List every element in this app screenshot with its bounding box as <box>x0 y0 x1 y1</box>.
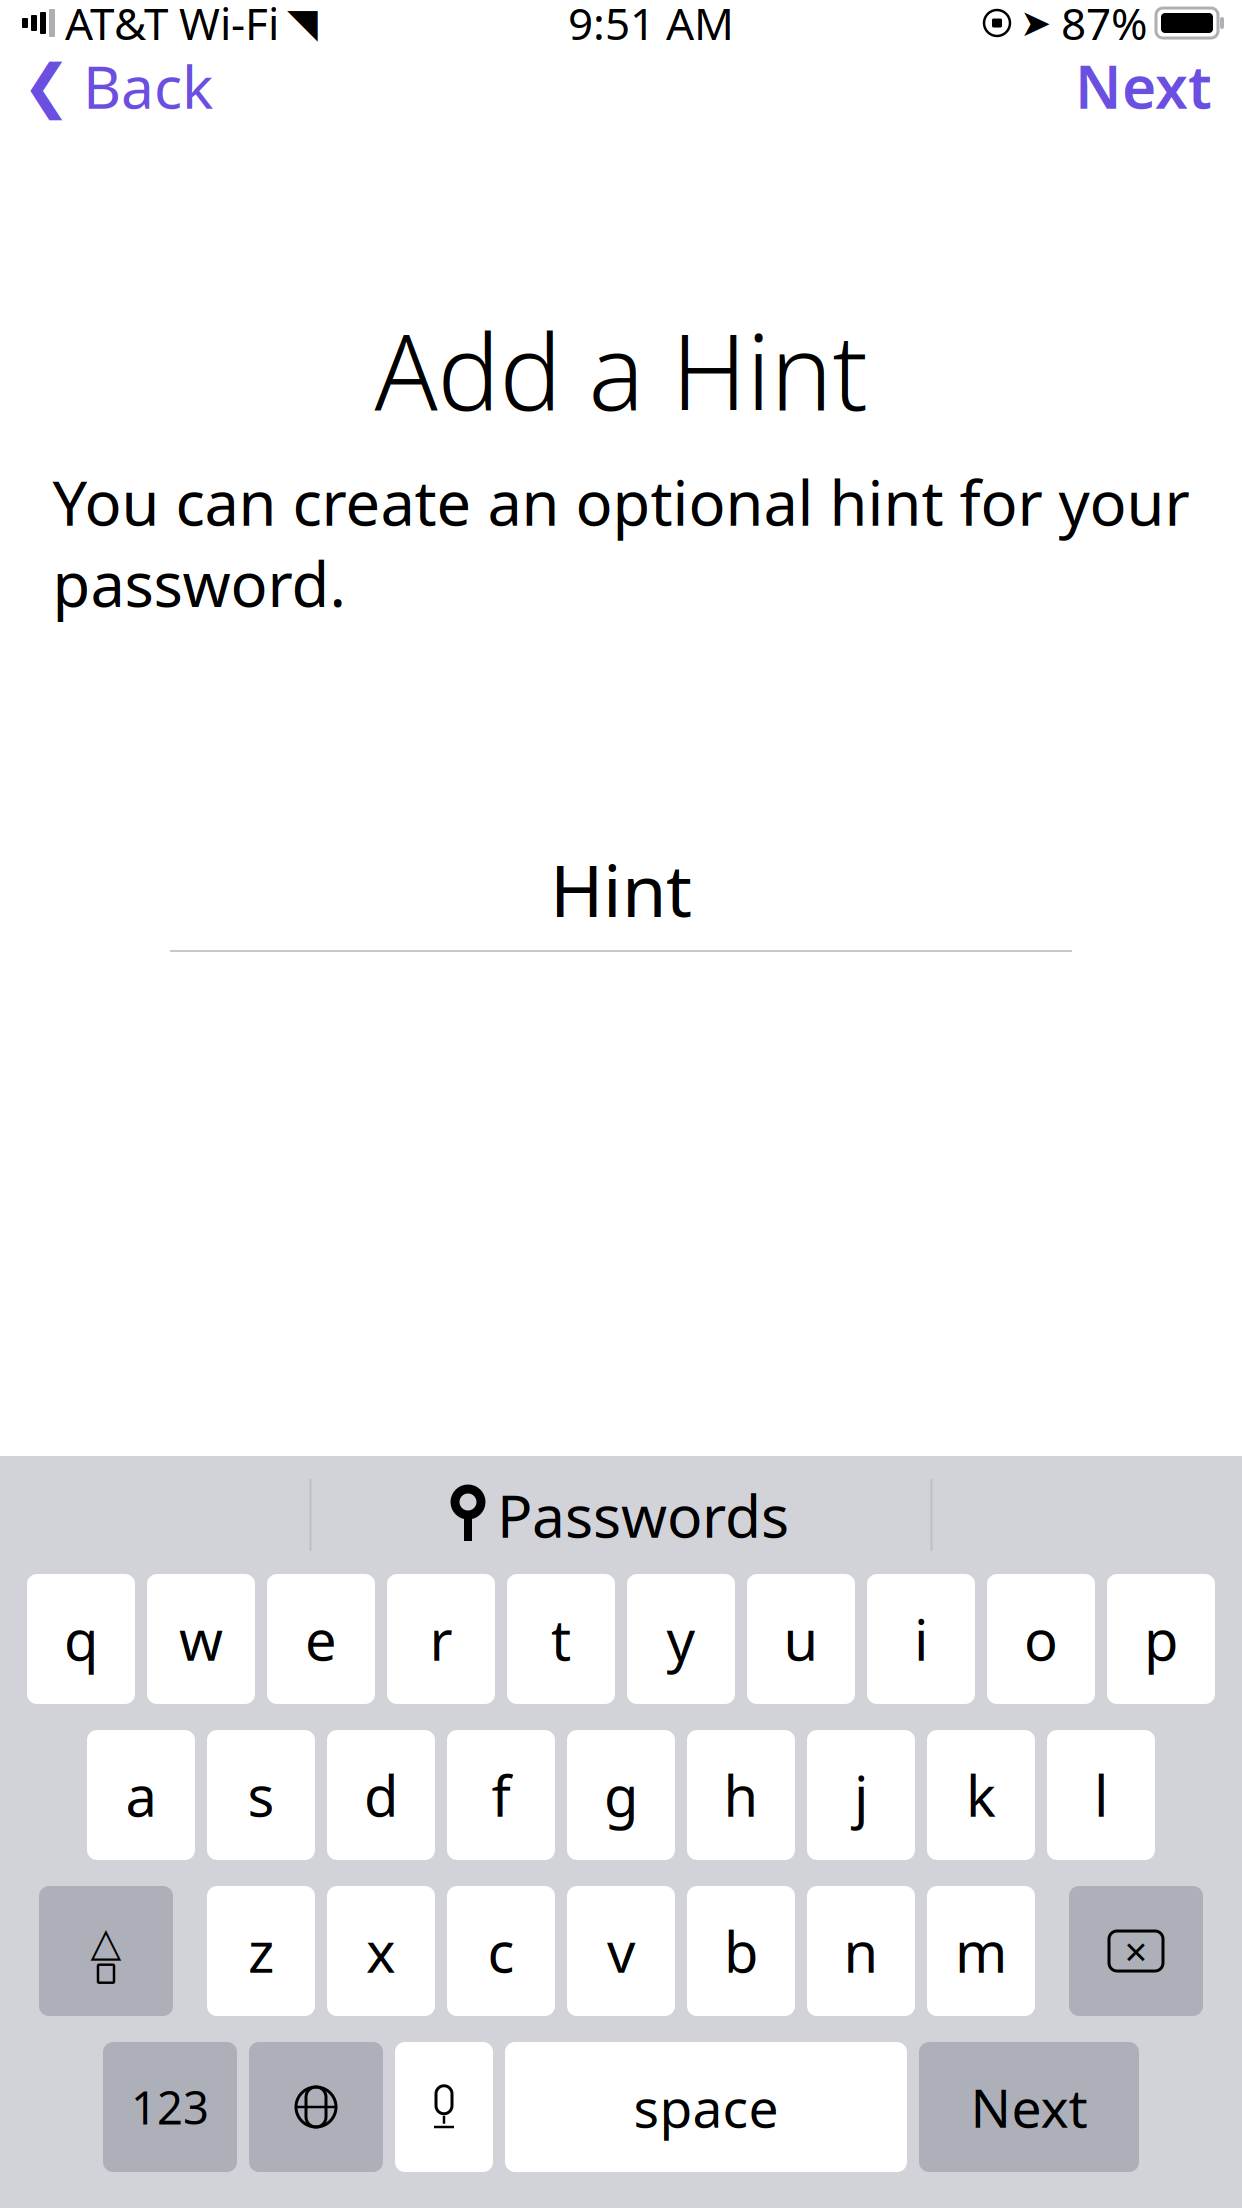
staticText: n <box>843 1914 878 1988</box>
button[interactable]: b <box>687 1886 795 2016</box>
button[interactable]: s <box>207 1730 315 1860</box>
button[interactable]: x <box>327 1886 435 2016</box>
staticText: Passwords <box>497 1476 789 1554</box>
button[interactable]: Delete <box>1069 1886 1203 2016</box>
button[interactable]: l <box>1047 1730 1155 1860</box>
button[interactable]: g <box>567 1730 675 1860</box>
staticText: b <box>724 1914 758 1988</box>
staticText: p <box>1144 1602 1178 1676</box>
staticText: f <box>491 1758 510 1832</box>
staticText: u <box>783 1602 818 1676</box>
staticText: t <box>551 1602 571 1676</box>
staticText: g <box>604 1758 638 1832</box>
staticText: Next <box>1075 47 1212 125</box>
button[interactable]: Next keyboard <box>249 2042 383 2172</box>
button[interactable]: space <box>505 2042 907 2172</box>
staticText: AT&T Wi-Fi <box>65 0 279 52</box>
staticText: Next <box>970 2072 1087 2142</box>
button[interactable]: r <box>387 1574 495 1704</box>
staticText: ➤ <box>1020 2 1051 44</box>
button[interactable]: k <box>927 1730 1035 1860</box>
button[interactable]: d <box>327 1730 435 1860</box>
staticText: e <box>305 1602 337 1676</box>
button[interactable]: c <box>447 1886 555 2016</box>
button[interactable]: m <box>927 1886 1035 2016</box>
button[interactable]: e <box>267 1574 375 1704</box>
button[interactable]: 123 <box>103 2042 237 2172</box>
button[interactable]: p <box>1107 1574 1215 1704</box>
staticText: 87% <box>1061 0 1148 52</box>
button[interactable]: h <box>687 1730 795 1860</box>
staticText: d <box>364 1758 398 1832</box>
staticText: s <box>247 1758 274 1832</box>
staticText: i <box>914 1602 928 1676</box>
staticText: a <box>125 1758 156 1832</box>
staticText: space <box>633 2072 778 2142</box>
button[interactable]: u <box>747 1574 855 1704</box>
button[interactable]: Passwords <box>423 1468 819 1562</box>
button[interactable]: o <box>987 1574 1095 1704</box>
button[interactable]: Dictation <box>395 2042 493 2172</box>
staticText: You can create an optional hint for your… <box>52 461 1189 624</box>
staticText: Add a Hint <box>374 301 867 439</box>
staticText: r <box>429 1602 452 1676</box>
staticText: × <box>1124 1924 1147 1977</box>
button[interactable]: j <box>807 1730 915 1860</box>
staticText: h <box>723 1758 758 1832</box>
button[interactable]: q <box>27 1574 135 1704</box>
staticText: m <box>955 1914 1007 1988</box>
button[interactable]: ❮ <box>0 37 213 135</box>
button[interactable]: Shift <box>39 1886 173 2016</box>
staticText: v <box>607 1914 635 1988</box>
staticText: o <box>1024 1602 1058 1676</box>
staticText: j <box>854 1758 868 1832</box>
staticText: c <box>487 1914 514 1988</box>
button[interactable]: Next <box>1075 37 1242 135</box>
button[interactable]: i <box>867 1574 975 1704</box>
staticText: △ <box>90 1919 121 1965</box>
staticText: z <box>248 1914 274 1988</box>
button[interactable]: f <box>447 1730 555 1860</box>
button[interactable]: z <box>207 1886 315 2016</box>
staticText: Hint <box>550 841 692 937</box>
button[interactable]: a <box>87 1730 195 1860</box>
staticText: q <box>64 1602 98 1676</box>
staticText: y <box>666 1602 695 1676</box>
staticText: Back <box>83 47 213 125</box>
staticText: ◥ <box>287 0 318 46</box>
button[interactable]: w <box>147 1574 255 1704</box>
button[interactable]: t <box>507 1574 615 1704</box>
button[interactable]: y <box>627 1574 735 1704</box>
button[interactable]: Next <box>919 2042 1139 2172</box>
button[interactable]: n <box>807 1886 915 2016</box>
staticText: w <box>179 1602 223 1676</box>
staticText: l <box>1094 1758 1108 1832</box>
staticText: ❮ <box>22 53 71 119</box>
staticText: 123 <box>131 2077 209 2137</box>
staticText: x <box>366 1914 396 1988</box>
staticText: 9:51 AM <box>568 0 734 52</box>
staticText: k <box>966 1758 996 1832</box>
button[interactable]: v <box>567 1886 675 2016</box>
